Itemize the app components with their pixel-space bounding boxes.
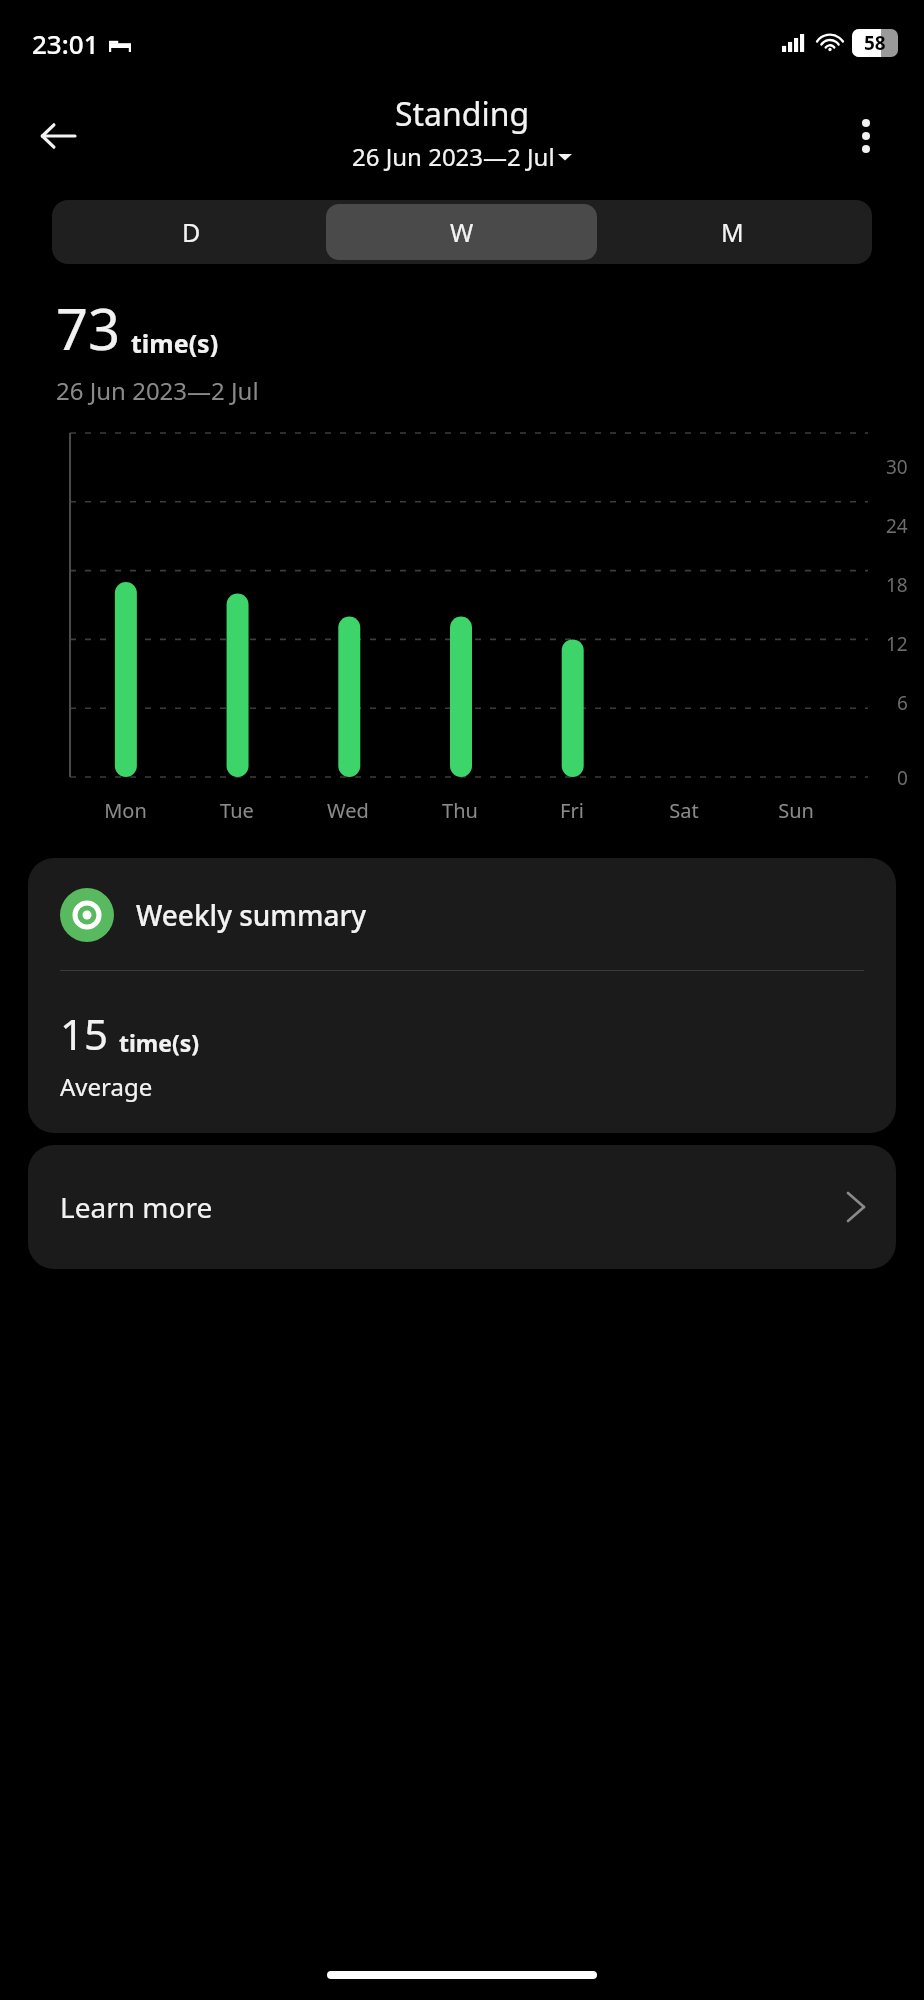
staticText: time(s) [131,326,219,360]
staticText: Thu [442,797,478,824]
staticText: Sun [778,797,814,824]
staticText: Standing [395,92,530,136]
staticText: 12 [886,631,908,657]
staticText: M [721,215,744,249]
staticText: time(s) [119,1027,200,1058]
staticText: 26 Jun 2023—2 Jul [352,140,555,173]
staticText: 15 [60,1005,109,1062]
staticText: 24 [886,513,908,539]
button[interactable]: W [326,204,597,260]
staticText: D [182,215,201,249]
staticText: 73 [56,290,121,366]
button[interactable]: M [597,204,868,260]
button[interactable]: 26 Jun 2023—2 Jul [352,140,572,173]
staticText: 30 [886,454,908,480]
button[interactable]: Weekly summary [28,858,896,1133]
staticText: Tue [220,797,254,824]
staticText: 58 [864,30,886,56]
button[interactable]: More options [834,104,898,168]
staticText: Wed [327,797,369,824]
button[interactable]: Back [26,104,90,168]
button[interactable]: D [56,204,326,260]
staticText: W [450,215,474,249]
staticText: Sat [669,797,699,824]
staticText: Weekly summary [136,896,367,934]
staticText: Fri [560,797,584,824]
staticText: Mon [104,797,147,824]
staticText: Learn more [60,1188,213,1226]
staticText: 0 [897,765,908,791]
staticText: 23:01 [32,26,99,61]
staticText: Average [60,1070,153,1103]
staticText: 6 [897,690,908,716]
staticText: 26 Jun 2023—2 Jul [56,374,259,407]
staticText: 18 [886,572,908,598]
button[interactable]: Learn more [28,1145,896,1269]
